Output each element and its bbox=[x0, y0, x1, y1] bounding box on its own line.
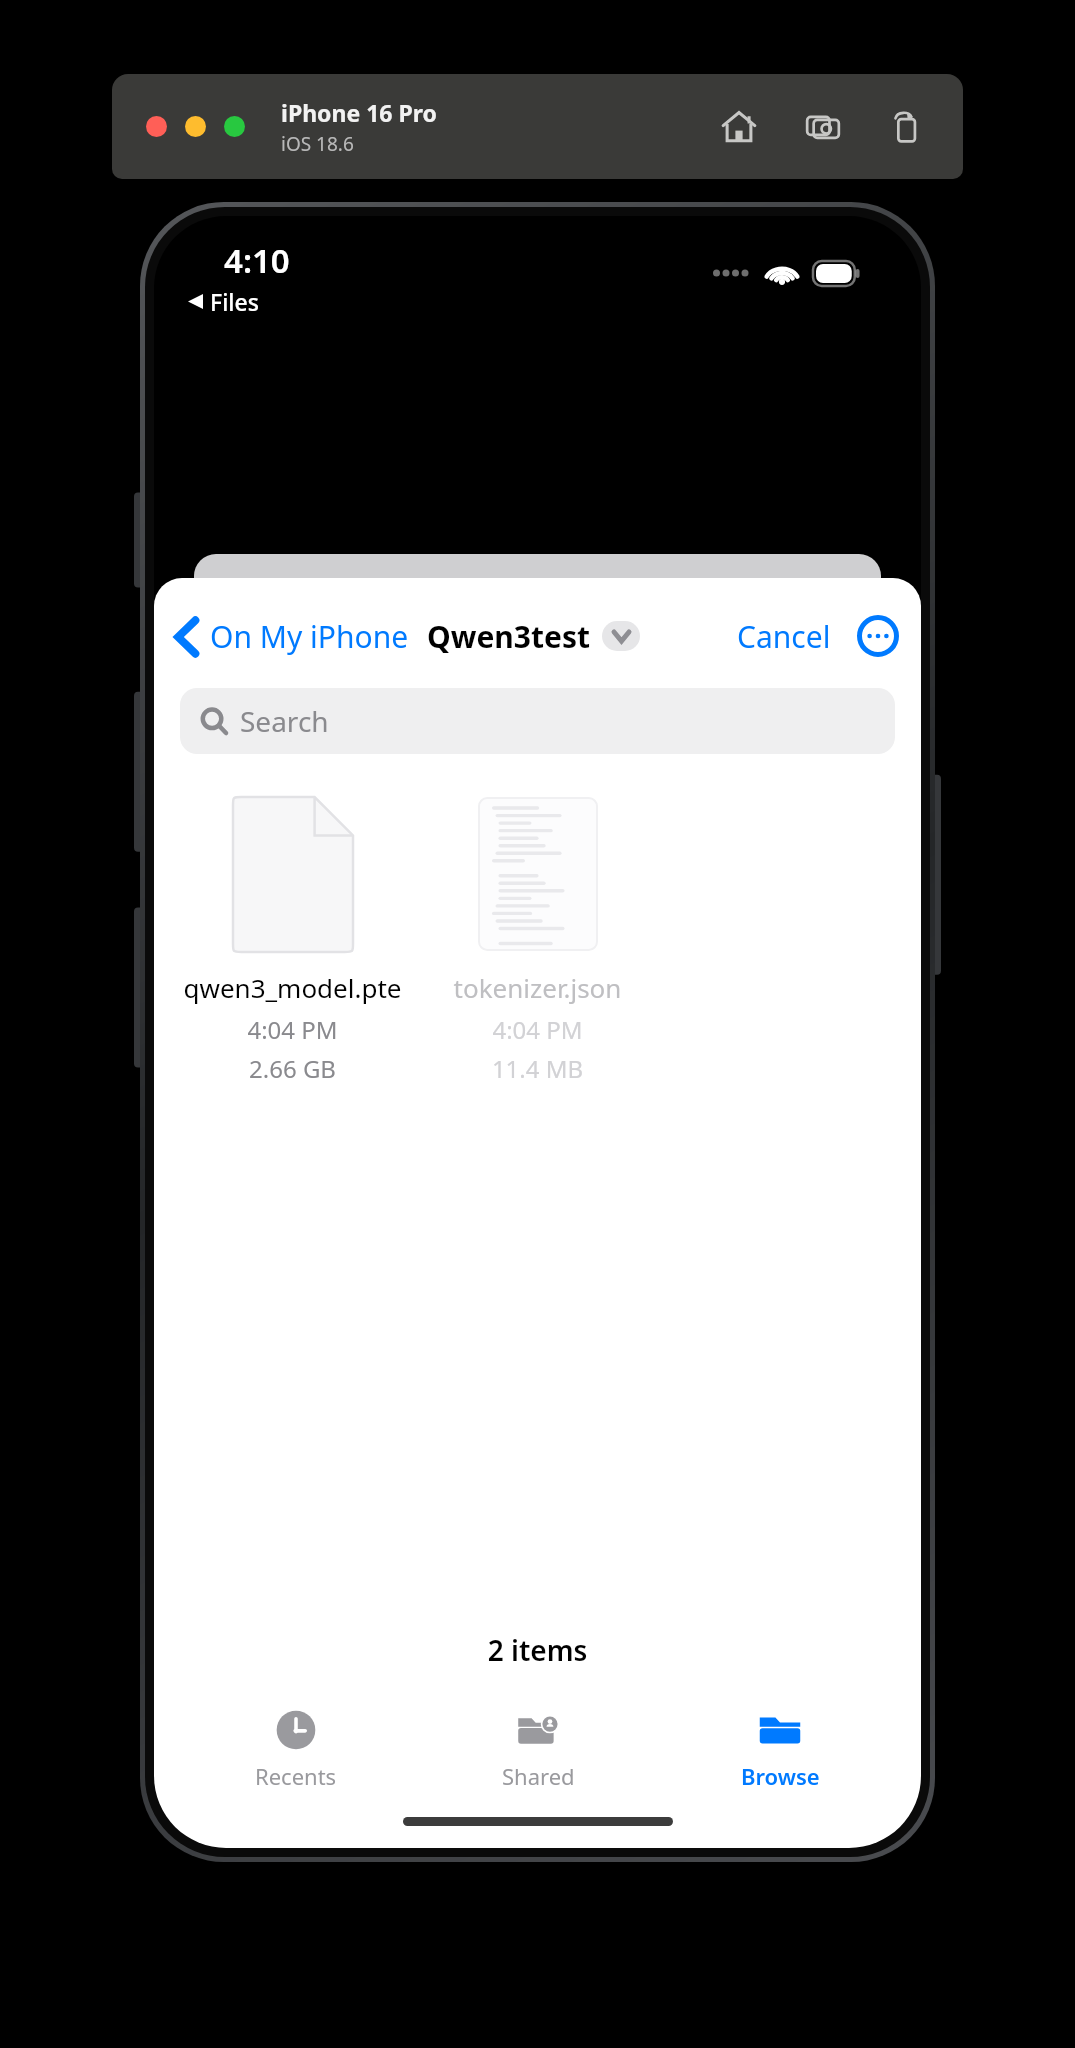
button[interactable]: Rotate bbox=[885, 105, 929, 149]
staticText: Shared bbox=[502, 1761, 575, 1791]
staticText: iOS 18.6 bbox=[281, 131, 354, 157]
staticText: Cancel bbox=[737, 616, 831, 657]
staticText: Recents bbox=[255, 1761, 337, 1791]
button[interactable]: Cancel bbox=[737, 616, 831, 657]
staticText: Files bbox=[210, 286, 259, 317]
button[interactable]: Close bbox=[146, 116, 167, 137]
staticText: 4:04 PM bbox=[180, 1013, 405, 1046]
staticText: tokenizer.json bbox=[425, 970, 650, 1005]
staticText: iPhone 16 Pro bbox=[281, 97, 437, 128]
staticText: 4:04 PM bbox=[425, 1013, 650, 1046]
staticText: 2.66 GB bbox=[180, 1052, 405, 1085]
button[interactable]: Zoom bbox=[224, 116, 245, 137]
staticText: Qwen3test bbox=[427, 616, 590, 657]
button[interactable]: tokenizer.json bbox=[415, 794, 660, 1085]
staticText: 11.4 MB bbox=[425, 1052, 650, 1085]
staticText: qwen3_model.pte bbox=[180, 970, 405, 1005]
button[interactable]: Home bbox=[717, 105, 761, 149]
staticText: Browse bbox=[741, 1761, 820, 1791]
button[interactable]: Browse bbox=[659, 1705, 901, 1795]
staticText: Search bbox=[240, 702, 329, 740]
button[interactable]: On My iPhone bbox=[176, 616, 409, 657]
staticText: On My iPhone bbox=[210, 616, 409, 657]
button[interactable]: Recents bbox=[174, 1705, 417, 1795]
staticText: 2 items bbox=[154, 1631, 921, 1669]
button[interactable]: Folder options bbox=[602, 621, 640, 651]
button[interactable]: qwen3_model.pte bbox=[170, 794, 415, 1085]
button[interactable]: Minimize bbox=[185, 116, 206, 137]
button[interactable]: Screenshot bbox=[801, 105, 845, 149]
button[interactable]: More options bbox=[857, 615, 899, 657]
button[interactable]: Shared bbox=[417, 1705, 659, 1795]
button[interactable]: Search bbox=[180, 688, 895, 754]
staticText: 4:10 bbox=[224, 238, 290, 283]
